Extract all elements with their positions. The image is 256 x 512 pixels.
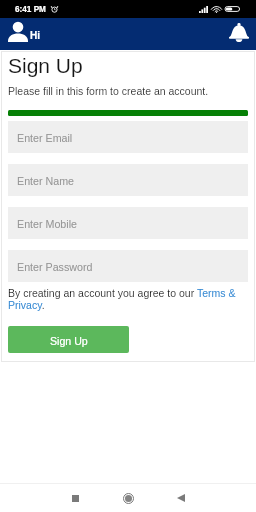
button[interactable]: Hi [0, 22, 46, 46]
button[interactable]: Recent apps [63, 486, 87, 510]
staticText: Please fill in this form to create an ac… [8, 85, 209, 97]
button[interactable]: Enter Password [8, 250, 248, 282]
button[interactable]: Notifications [222, 19, 252, 49]
staticText: 6:41 PM [15, 5, 46, 14]
button[interactable]: Sign Up [8, 326, 129, 353]
staticText: Enter Password [17, 261, 93, 273]
button[interactable]: Enter Mobile [8, 207, 248, 239]
staticText: By creating an account you agree to our … [8, 287, 248, 312]
button[interactable]: Home [116, 486, 140, 510]
button[interactable]: Back [169, 486, 193, 510]
button[interactable]: Enter Name [8, 164, 248, 196]
button[interactable]: Enter Email [8, 121, 248, 153]
staticText: Hi [30, 30, 40, 41]
staticText: Enter Email [17, 132, 73, 144]
staticText: Enter Name [17, 175, 75, 187]
staticText: Sign Up [50, 335, 88, 347]
staticText: Sign Up [8, 54, 83, 77]
staticText: Enter Mobile [17, 218, 77, 230]
